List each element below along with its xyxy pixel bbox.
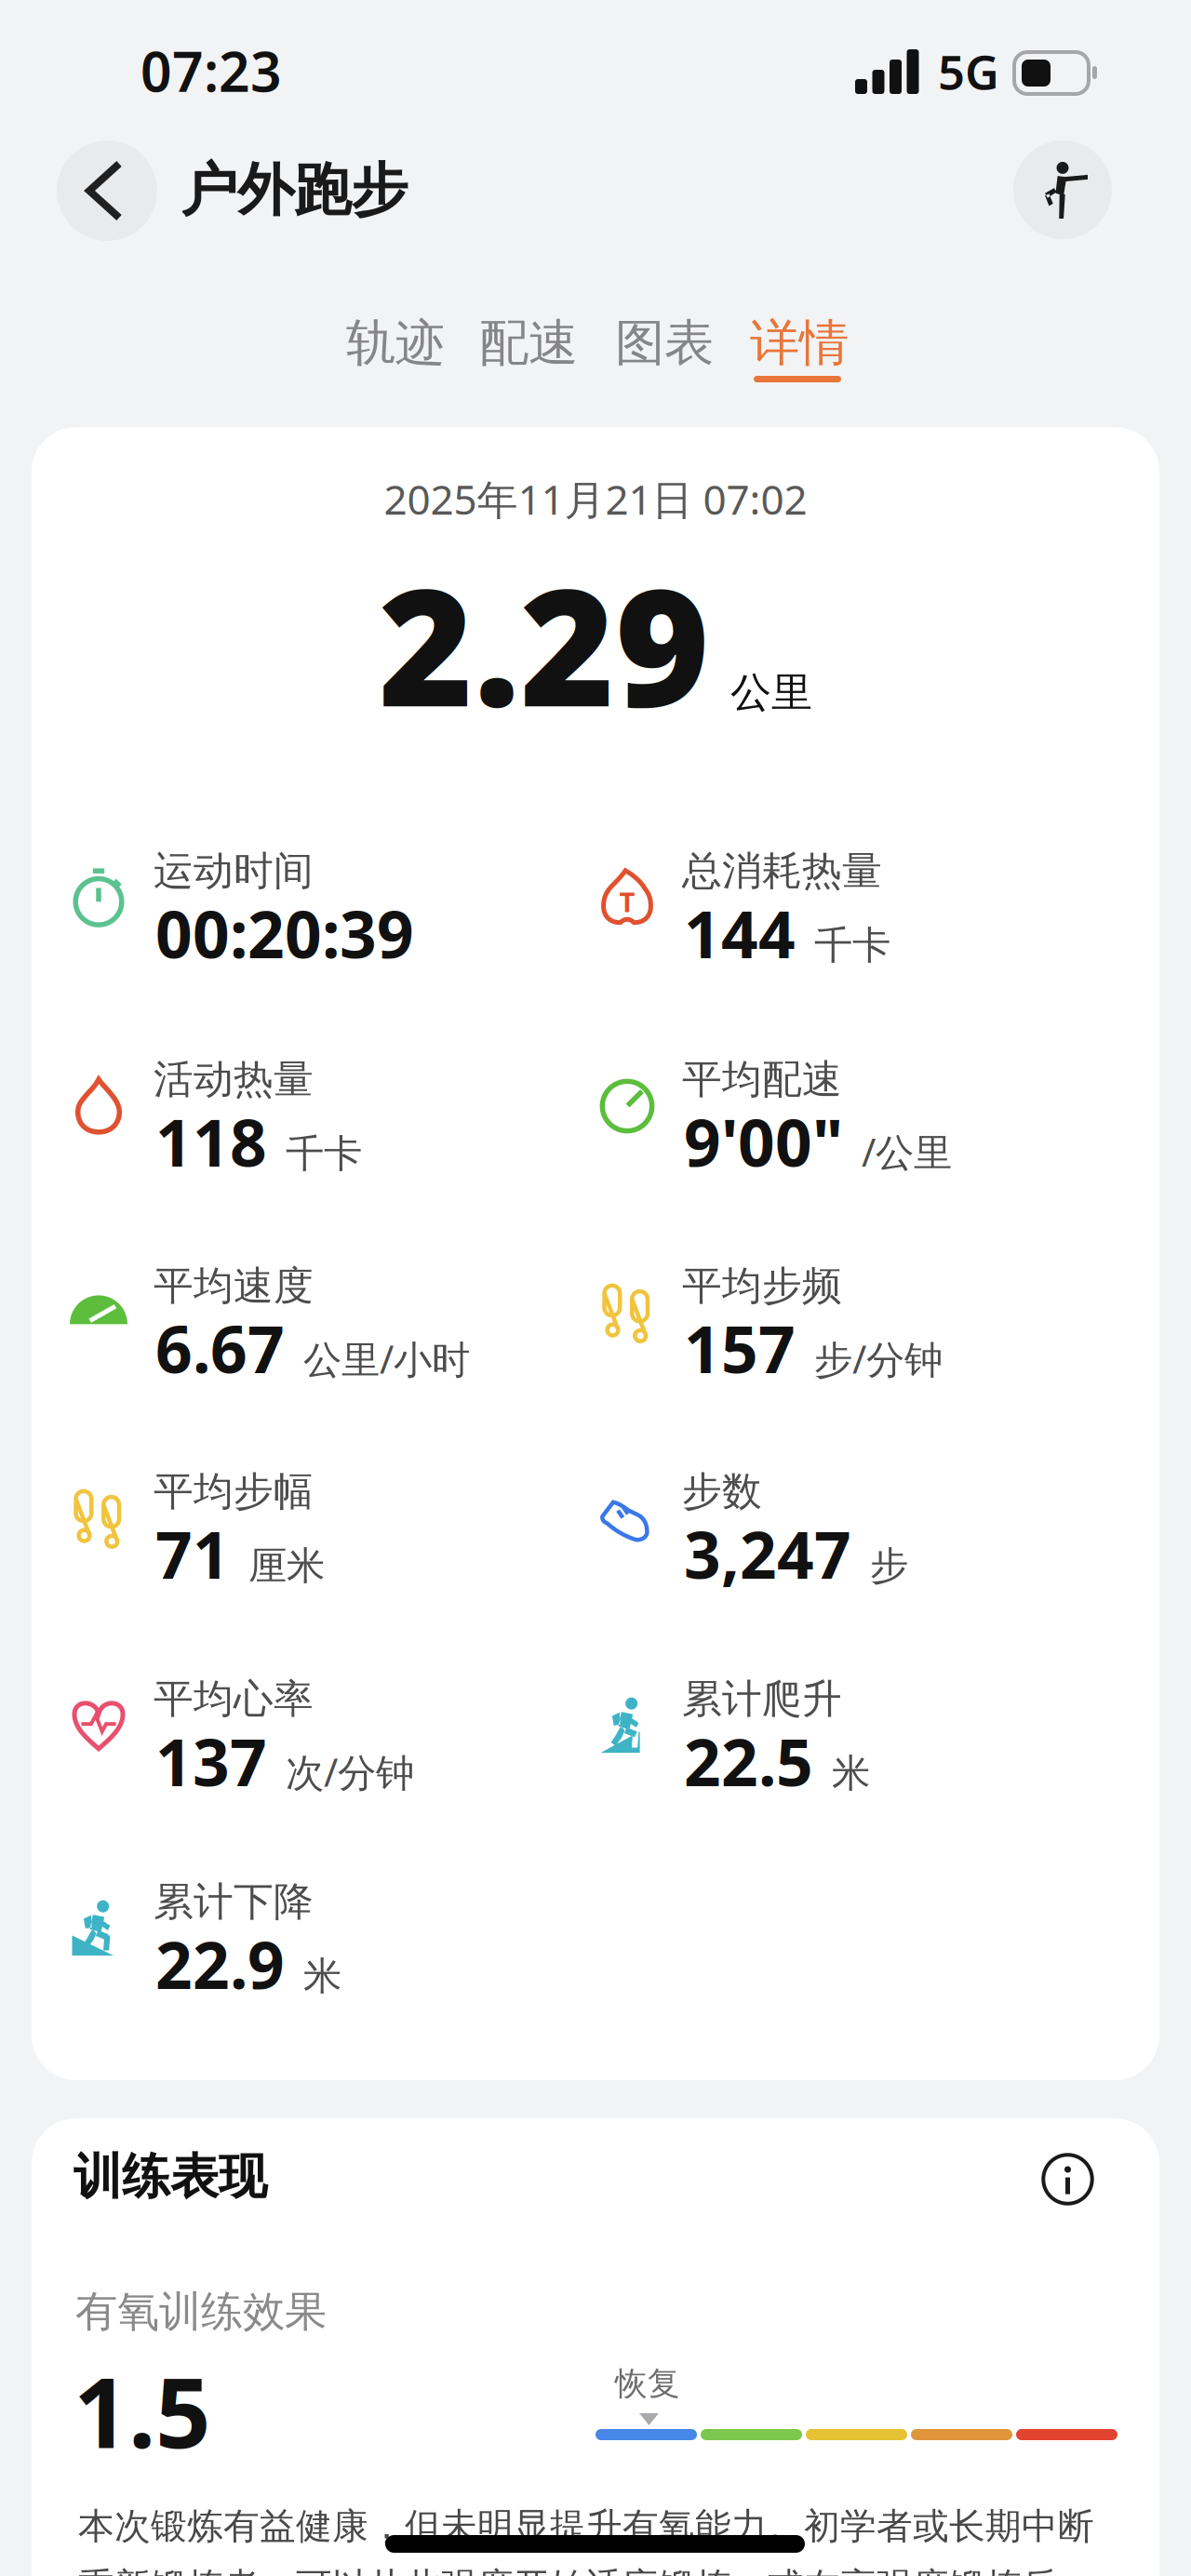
staticText: 千卡 (286, 1130, 362, 1177)
staticText: 157 (684, 1305, 796, 1391)
staticText: 步数 (682, 1467, 762, 1516)
staticText: 米 (303, 1953, 341, 2000)
staticText: /公里 (862, 1126, 952, 1177)
staticText: 总消耗热量 (682, 847, 882, 895)
staticText: 平均配速 (682, 1055, 842, 1104)
staticText: 00:20:39 (155, 890, 414, 976)
button[interactable]: 图表 (615, 313, 714, 374)
staticText: 1.5 (74, 2346, 210, 2475)
staticText: 6.67 (155, 1305, 285, 1391)
staticText: 118 (155, 1099, 267, 1184)
staticText: 平均速度 (154, 1261, 314, 1310)
button[interactable]: About training performance (1041, 2153, 1094, 2206)
staticText: T (619, 883, 635, 920)
staticText: 137 (155, 1718, 267, 1804)
staticText: 累计下降 (154, 1877, 314, 1926)
staticText: 有氧训练效果 (75, 2286, 327, 2338)
staticText: 配速 (479, 313, 578, 374)
staticText: 厘米 (248, 1542, 325, 1590)
staticText: 公里 (730, 668, 812, 718)
staticText: 07:23 (141, 34, 282, 107)
staticText: 平均心率 (154, 1675, 314, 1723)
staticText: 平均步频 (682, 1261, 842, 1310)
staticText: 次/分钟 (286, 1746, 414, 1797)
staticText: 平均步幅 (154, 1467, 314, 1516)
staticText: 71 (155, 1511, 230, 1596)
staticText: 详情 (750, 313, 849, 374)
button[interactable]: 配速 (479, 313, 578, 374)
staticText: 本次锻炼有益健康，但未明显提升有氧能力。初学者或长期中断重新锻炼者，可以从此强度… (78, 2504, 1094, 2576)
staticText: 步/分钟 (814, 1333, 943, 1384)
button[interactable]: Back (57, 140, 157, 241)
staticText: 2.29 (379, 537, 710, 751)
staticText: 活动热量 (154, 1055, 314, 1104)
button[interactable]: 轨迹 (346, 313, 445, 374)
staticText: 22.9 (155, 1921, 285, 2007)
staticText: 米 (832, 1750, 870, 1797)
staticText: 图表 (615, 313, 714, 374)
staticText: 训练表现 (74, 2147, 267, 2207)
staticText: 9'00" (684, 1099, 843, 1184)
staticText: 千卡 (814, 922, 890, 969)
staticText: 22.5 (684, 1718, 813, 1804)
button[interactable]: 详情 (750, 313, 849, 374)
staticText: 5G (938, 40, 999, 103)
staticText: 轨迹 (346, 313, 445, 374)
staticText: 公里/小时 (303, 1333, 470, 1384)
staticText: 恢复 (615, 2364, 680, 2404)
staticText: 户外跑步 (181, 155, 408, 225)
button[interactable]: Workout animation (1013, 140, 1112, 239)
staticText: 累计爬升 (682, 1675, 842, 1723)
staticText: 步 (870, 1542, 908, 1590)
staticText: 144 (684, 890, 796, 976)
staticText: 运动时间 (154, 847, 314, 895)
staticText: 3,247 (684, 1511, 851, 1596)
staticText: 2025年11月21日 07:02 (384, 472, 807, 526)
